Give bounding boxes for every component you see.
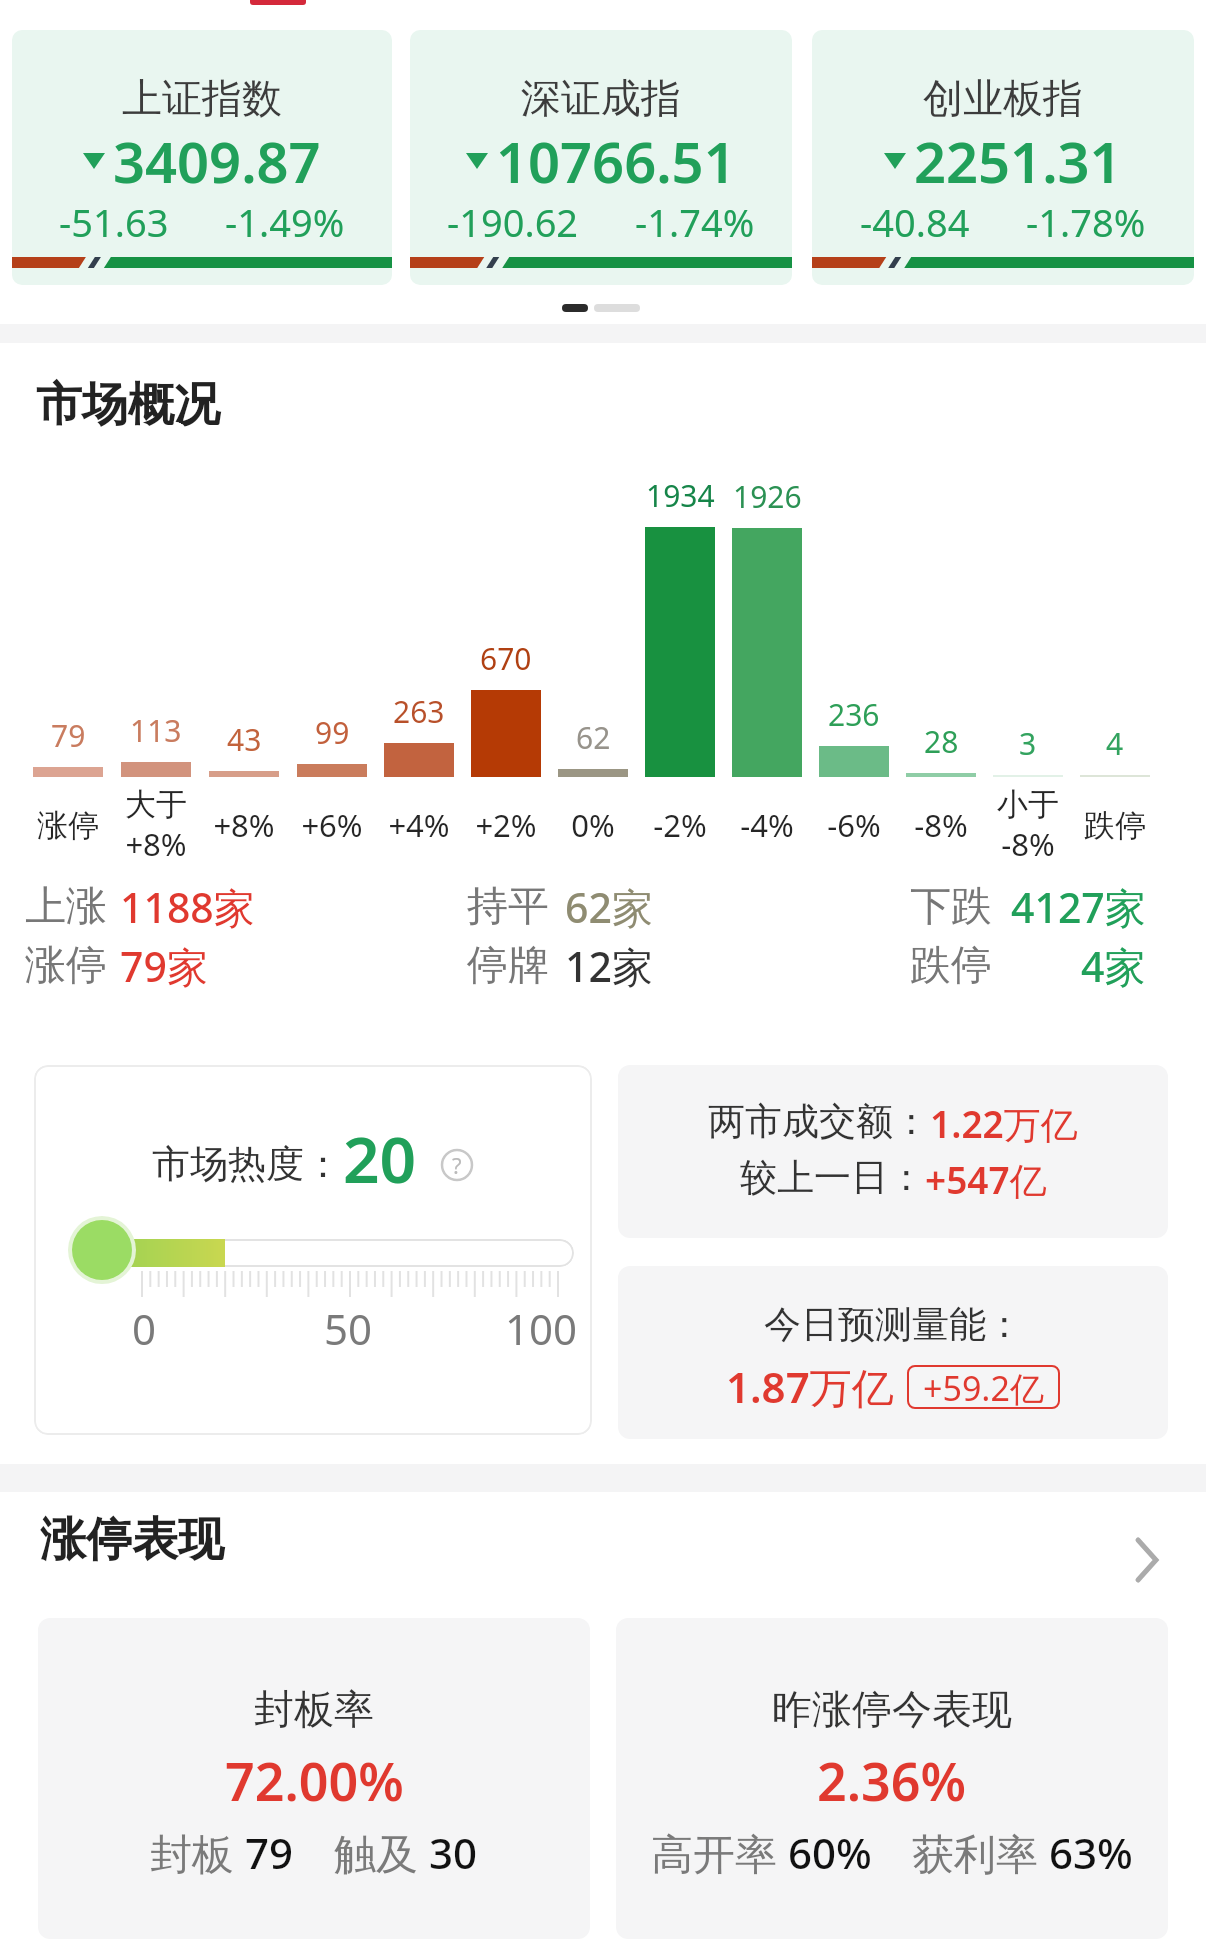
staticText: 获利率 (912, 1824, 1049, 1881)
staticText: 12家 (565, 938, 653, 994)
staticText: -4% (740, 804, 794, 846)
button[interactable] (410, 30, 792, 285)
staticText: 670 (480, 638, 532, 679)
staticText: +4% (388, 804, 450, 846)
staticText: 79家 (120, 938, 208, 994)
button[interactable] (616, 1618, 1168, 1939)
staticText: 触及 (334, 1824, 429, 1881)
staticText: -190.62 (447, 196, 579, 248)
staticText: +59.2亿 (923, 1365, 1044, 1409)
button[interactable] (618, 1266, 1168, 1439)
staticText: 封板率 (254, 1684, 374, 1734)
button[interactable] (12, 30, 392, 285)
staticText: 1188家 (120, 879, 255, 935)
staticText: 深证成指 (521, 73, 681, 123)
staticText: 4家 (1081, 938, 1146, 994)
staticText: 昨涨停今表现 (772, 1684, 1012, 1734)
staticText: 1926 (733, 476, 802, 517)
staticText: 小于 -8% (997, 785, 1059, 865)
staticText: 封板 (150, 1824, 245, 1881)
staticText: 79 (51, 715, 86, 756)
staticText: 3 (1019, 723, 1037, 764)
staticText: -1.49% (225, 196, 345, 248)
staticText: 10766.51 (496, 123, 736, 199)
staticText: 上证指数 (122, 73, 282, 123)
staticText: 99 (315, 712, 350, 753)
staticText: +2% (475, 804, 537, 846)
staticText: 跌停 (1084, 806, 1146, 845)
staticText: -1.78% (1026, 196, 1146, 248)
staticText: 28 (924, 721, 959, 762)
staticText: 涨停表现 (40, 1511, 224, 1569)
staticText: 30 (429, 1824, 478, 1881)
staticText: 63% (1049, 1824, 1133, 1881)
staticText: 2.36% (817, 1745, 967, 1816)
staticText: 1934 (646, 475, 715, 516)
staticText: -40.84 (860, 196, 970, 248)
staticText: +6% (301, 804, 363, 846)
staticText: ? (452, 1150, 462, 1180)
staticText: 下跌 (910, 881, 992, 933)
staticText: 今日预测量能： (764, 1301, 1023, 1348)
staticText: 62家 (565, 879, 653, 935)
staticText: 大于 +8% (125, 785, 187, 865)
staticText: 上涨 (25, 881, 107, 933)
staticText: -8% (914, 804, 968, 846)
staticText: +8% (213, 804, 275, 846)
staticText: -1.74% (635, 196, 755, 248)
staticText: -51.63 (59, 196, 169, 248)
staticText: 43 (227, 719, 262, 760)
staticText: 1.87万亿 (726, 1358, 894, 1415)
staticText: 0% (571, 804, 615, 846)
staticText: +547亿 (925, 1154, 1047, 1205)
staticText: 263 (393, 691, 445, 732)
button[interactable] (618, 1065, 1168, 1238)
staticText: 停牌 (467, 940, 549, 992)
staticText: 79 (245, 1824, 294, 1881)
button[interactable] (38, 1618, 590, 1939)
staticText: 市场热度： (152, 1140, 342, 1188)
staticText: 2251.31 (914, 123, 1122, 199)
staticText: -2% (653, 804, 707, 846)
staticText: 市场概况 (36, 376, 220, 434)
staticText: 4127家 (1011, 879, 1146, 935)
staticText: 较上一日： (740, 1154, 925, 1201)
staticText: 20 (343, 1115, 417, 1202)
staticText: -6% (827, 804, 881, 846)
staticText: 涨停 (37, 806, 99, 845)
staticText: 100 (505, 1300, 578, 1357)
staticText: 高开率 (651, 1824, 788, 1881)
staticText: 50 (324, 1300, 373, 1357)
staticText: 4 (1106, 723, 1124, 764)
button[interactable] (812, 30, 1194, 285)
staticText: 62 (576, 717, 611, 758)
button[interactable]: 涨停表现 (0, 1520, 1206, 1600)
staticText: 113 (130, 710, 182, 751)
button[interactable] (34, 1065, 592, 1435)
staticText: 72.00% (225, 1745, 404, 1816)
staticText: 持平 (467, 881, 549, 933)
staticText: 跌停 (910, 940, 992, 992)
staticText: 创业板指 (923, 73, 1083, 123)
staticText: 3409.87 (113, 123, 321, 199)
staticText: 236 (828, 694, 880, 735)
staticText: 两市成交额： (708, 1098, 930, 1145)
staticText: 0 (132, 1300, 157, 1357)
staticText: 涨停 (25, 940, 107, 992)
staticText: 60% (788, 1824, 872, 1881)
staticText: 1.22万亿 (930, 1098, 1078, 1149)
